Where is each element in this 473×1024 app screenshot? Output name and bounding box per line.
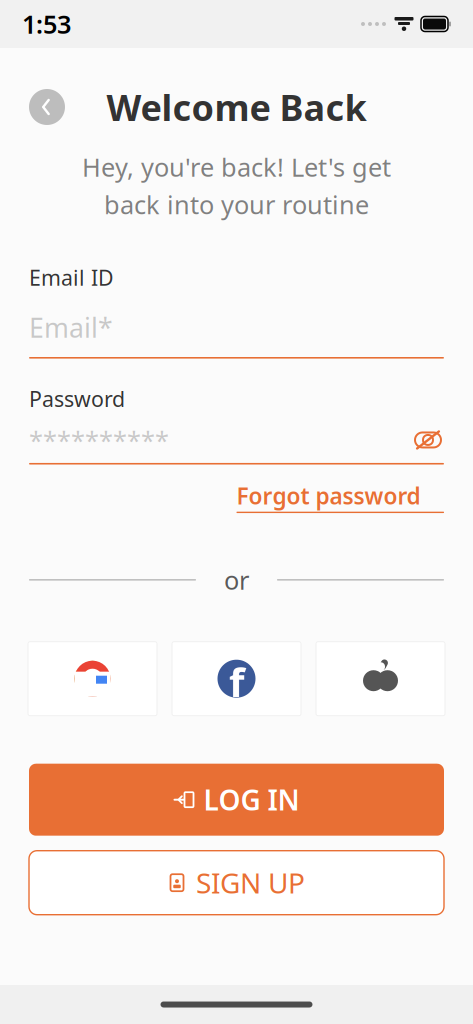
staticText: Forgot password — [236, 481, 420, 511]
button[interactable]: English — [158, 988, 234, 1016]
button[interactable]: Sign in with Google — [28, 642, 157, 716]
button[interactable]: Show password — [412, 427, 444, 453]
staticText: English — [158, 988, 234, 1016]
button[interactable]: SIGN UP — [29, 851, 444, 915]
staticText: | — [244, 988, 256, 1016]
staticText: French — [266, 988, 333, 1016]
button[interactable]: Sign in with Facebook — [172, 642, 301, 716]
button[interactable]: LOG IN — [29, 764, 444, 836]
staticText: Welcome Back — [106, 83, 366, 131]
staticText: SIGN UP — [196, 864, 305, 901]
button[interactable]: Back — [29, 89, 65, 125]
staticText: Password — [29, 385, 125, 413]
button[interactable]: French — [266, 988, 333, 1016]
button[interactable]: Forgot password — [236, 481, 444, 513]
staticText: Email* — [29, 310, 113, 345]
staticText: 1:53 — [22, 7, 71, 41]
staticText: Hey, you're back! Let's get — [82, 150, 391, 184]
staticText: back into your routine — [104, 188, 369, 221]
button[interactable]: Sign in with Apple — [316, 642, 445, 716]
staticText: LOG IN — [203, 781, 299, 818]
staticText: Email ID — [29, 263, 114, 292]
staticText: or — [224, 563, 249, 597]
staticText: f — [229, 655, 244, 708]
staticText: ********** — [29, 423, 169, 457]
